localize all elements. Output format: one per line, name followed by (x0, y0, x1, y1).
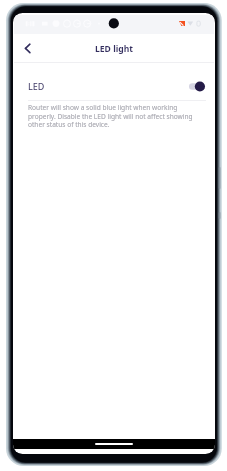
staticText: LED (28, 80, 45, 92)
button[interactable]: LED (14, 63, 214, 100)
button[interactable]: LED toggle (189, 81, 205, 92)
staticText: Router will show a solid blue light when… (28, 103, 202, 128)
staticText: LED light (95, 43, 134, 55)
button[interactable]: Back (14, 34, 40, 62)
